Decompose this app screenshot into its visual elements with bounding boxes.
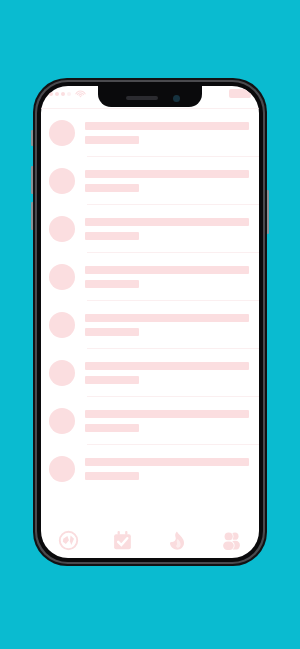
button[interactable]: Events: [95, 522, 149, 558]
button[interactable]: [41, 157, 259, 204]
button[interactable]: [41, 205, 259, 252]
button[interactable]: [41, 301, 259, 348]
button[interactable]: [41, 349, 259, 396]
button[interactable]: Explore: [41, 522, 95, 558]
button[interactable]: [41, 445, 259, 492]
button[interactable]: [41, 253, 259, 300]
button[interactable]: Trending: [149, 522, 204, 558]
button[interactable]: [41, 397, 259, 444]
button[interactable]: [41, 109, 259, 156]
button[interactable]: People: [204, 522, 259, 558]
